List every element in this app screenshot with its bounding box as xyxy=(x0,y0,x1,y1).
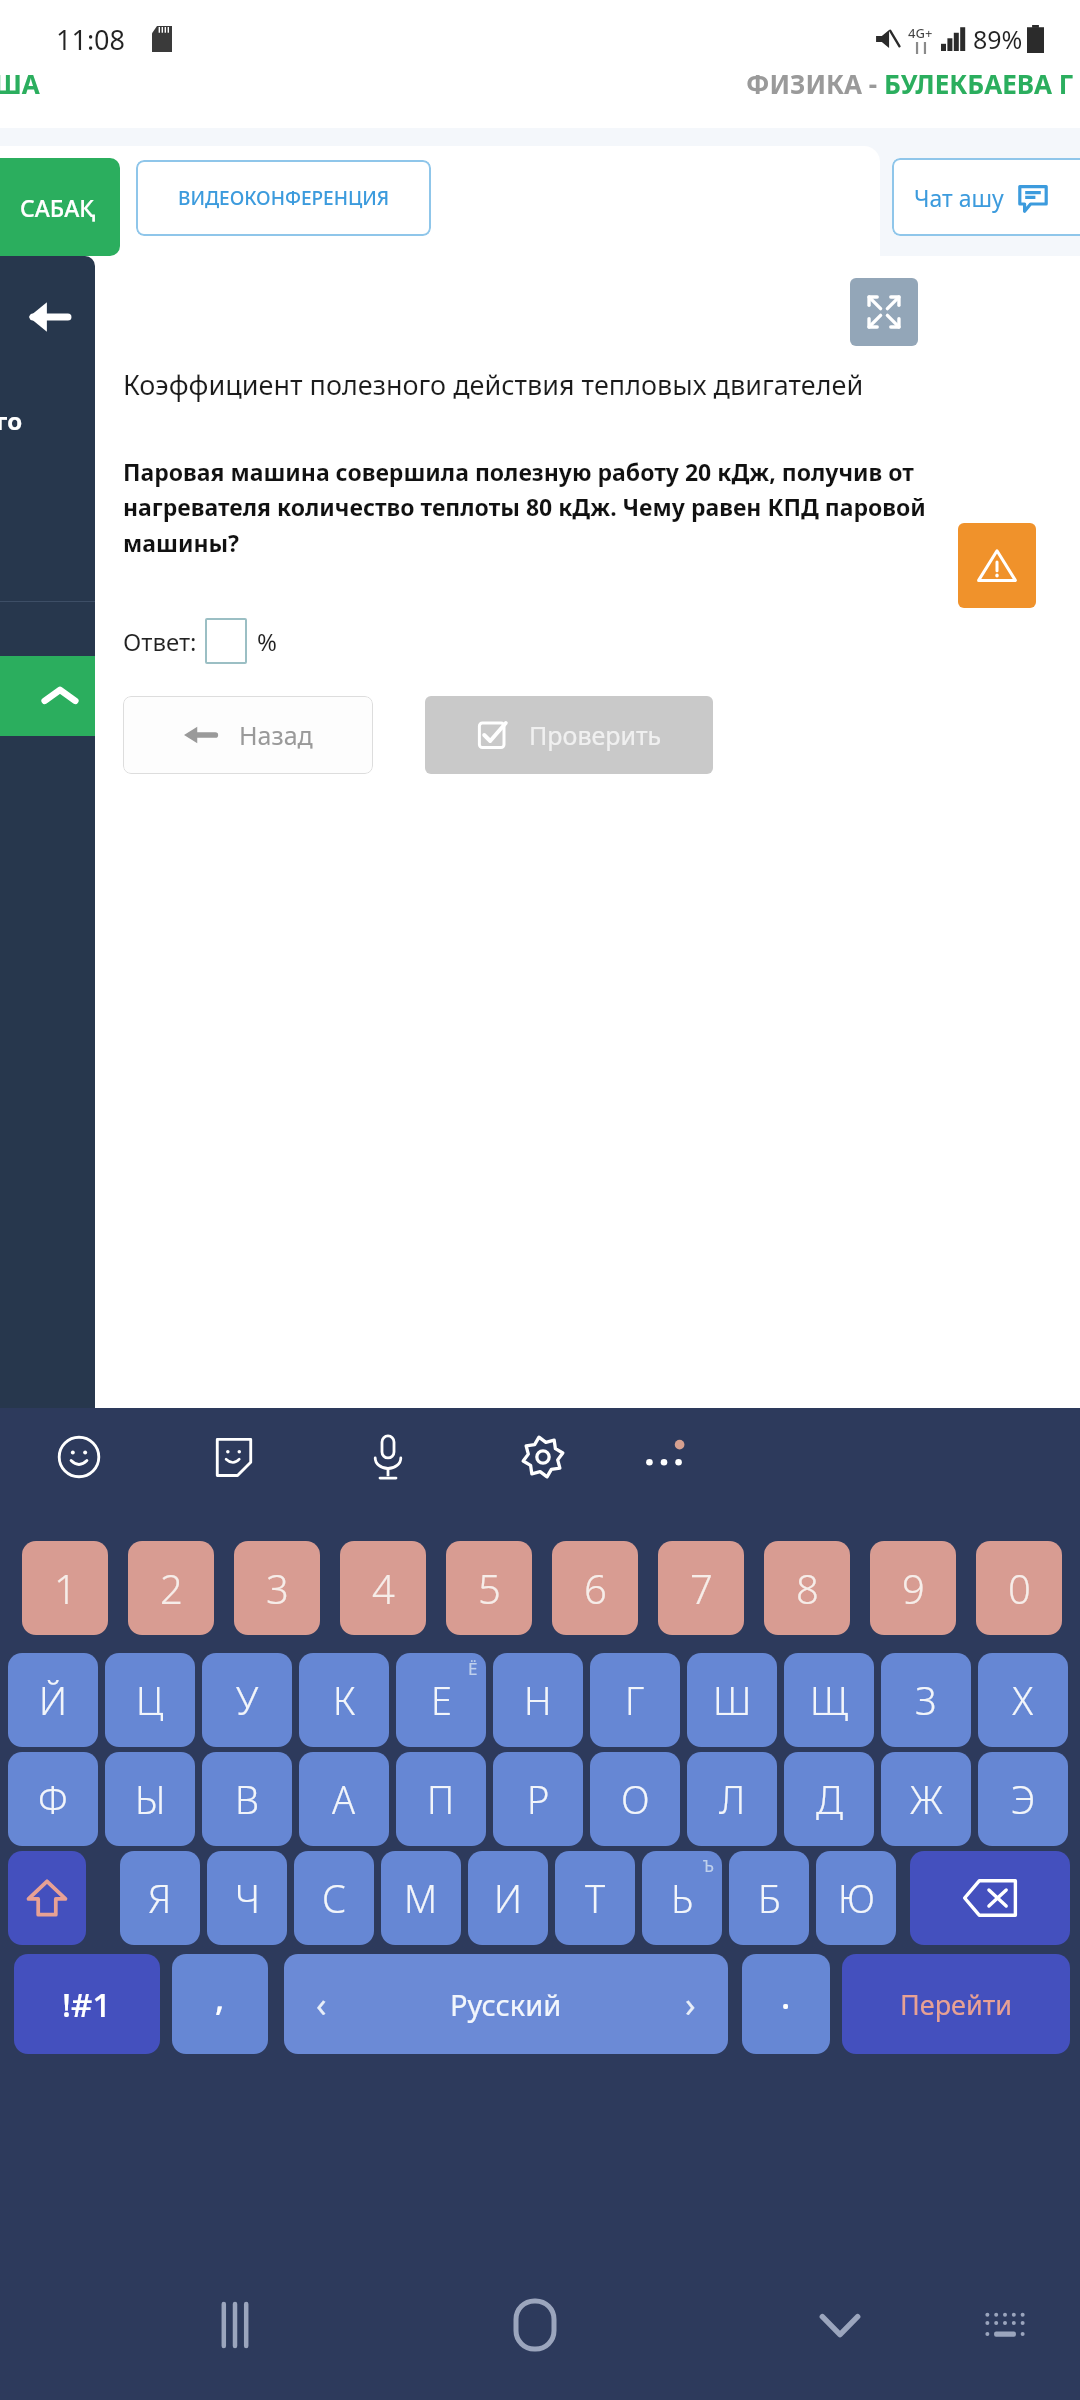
staticText: !#1 xyxy=(62,1982,112,2027)
button[interactable]: Ы xyxy=(105,1752,195,1846)
button[interactable]: В xyxy=(202,1752,292,1846)
staticText: Коэффициент полезного действия тепловых … xyxy=(123,366,1063,403)
button[interactable]: У xyxy=(202,1653,292,1747)
button[interactable]: Ю xyxy=(816,1851,896,1945)
button[interactable]: И xyxy=(468,1851,548,1945)
button[interactable]: 7 xyxy=(658,1541,744,1635)
staticText: И xyxy=(494,1872,522,1924)
staticText: , xyxy=(215,1975,225,2021)
button[interactable]: Д xyxy=(784,1752,874,1846)
staticText: Е xyxy=(431,1674,452,1726)
staticText: . xyxy=(781,1973,791,2019)
staticText: БУЛЕКБАЕВА Г xyxy=(884,66,1074,101)
button[interactable]: Hide keyboard xyxy=(780,2250,900,2400)
button[interactable]: 3 xyxy=(234,1541,320,1635)
button[interactable]: Shift xyxy=(8,1851,86,1945)
staticText: Назад xyxy=(239,718,313,752)
button[interactable]: О xyxy=(590,1752,680,1846)
staticText: Ответ: xyxy=(123,625,197,658)
button[interactable]: П xyxy=(396,1752,486,1846)
staticText: 4 xyxy=(372,1561,395,1615)
button[interactable]: Т xyxy=(555,1851,635,1945)
button[interactable]: К xyxy=(299,1653,389,1747)
button[interactable]: Ц xyxy=(105,1653,195,1747)
other: Voice input xyxy=(368,1433,408,1481)
staticText: Д xyxy=(816,1773,843,1825)
button[interactable]: Назад xyxy=(123,696,373,774)
button[interactable]: . xyxy=(0,656,95,736)
staticText: Й xyxy=(39,1674,67,1726)
button[interactable]: Ш xyxy=(687,1653,777,1747)
other: Emoji xyxy=(57,1435,101,1479)
button[interactable]: Й xyxy=(8,1653,98,1747)
button[interactable]: 4 xyxy=(340,1541,426,1635)
staticText: ША xyxy=(0,66,40,101)
button[interactable]: Ч xyxy=(207,1851,287,1945)
staticText: Б xyxy=(758,1872,781,1924)
button[interactable]: 8 xyxy=(764,1541,850,1635)
button[interactable]: САБАҚ xyxy=(0,158,120,256)
button[interactable]: Л xyxy=(687,1752,777,1846)
button[interactable]: Р xyxy=(493,1752,583,1846)
button[interactable]: Х xyxy=(978,1653,1068,1747)
staticText: Ю xyxy=(838,1872,875,1924)
button[interactable]: Щ xyxy=(784,1653,874,1747)
staticText: Ж xyxy=(910,1773,943,1825)
button[interactable]: Ь xyxy=(642,1851,722,1945)
button[interactable]: ВИДЕОКОНФЕРЕНЦИЯ xyxy=(136,160,431,236)
staticText: 3 xyxy=(266,1561,289,1615)
button[interactable]: Ф xyxy=(8,1752,98,1846)
button[interactable]: 1 xyxy=(22,1541,108,1635)
button[interactable]: Backspace xyxy=(910,1851,1070,1945)
button[interactable]: Е xyxy=(396,1653,486,1747)
button[interactable]: 6 xyxy=(552,1541,638,1635)
button[interactable]: Н xyxy=(493,1653,583,1747)
button[interactable]: Warning xyxy=(958,523,1036,608)
button[interactable]: ‹ xyxy=(284,1954,728,2054)
button[interactable]: 0 xyxy=(976,1541,1062,1635)
staticText: 7 xyxy=(690,1561,713,1615)
staticText: ВИДЕОКОНФЕРЕНЦИЯ xyxy=(178,185,390,211)
staticText: С xyxy=(322,1872,347,1924)
button[interactable]: Recents xyxy=(175,2250,295,2400)
staticText: Ъ xyxy=(703,1855,714,1877)
staticText: Ё xyxy=(468,1657,478,1680)
staticText: 2 xyxy=(160,1561,183,1615)
button[interactable]: Чат ашу xyxy=(892,158,1080,236)
button[interactable]: Б xyxy=(729,1851,809,1945)
button[interactable]: Home xyxy=(475,2250,595,2400)
button[interactable]: Перейти xyxy=(842,1954,1070,2054)
staticText: Ц xyxy=(136,1674,164,1726)
button[interactable]: Switch keyboard xyxy=(950,2250,1060,2400)
staticText: % xyxy=(257,625,277,658)
staticText: П xyxy=(427,1773,455,1825)
staticText: 6 xyxy=(584,1561,607,1615)
button[interactable]: 5 xyxy=(446,1541,532,1635)
button[interactable]: Fullscreen xyxy=(850,278,918,346)
button[interactable]: А xyxy=(299,1752,389,1846)
button[interactable]: 9 xyxy=(870,1541,956,1635)
staticText: З xyxy=(915,1674,937,1726)
button[interactable]: Ж xyxy=(881,1752,971,1846)
button[interactable]: Проверить xyxy=(425,696,713,774)
staticText: САБАҚ xyxy=(20,192,96,223)
staticText: Г xyxy=(625,1674,645,1726)
button[interactable]: М xyxy=(381,1851,461,1945)
button[interactable] xyxy=(205,618,247,664)
staticText: А xyxy=(332,1773,356,1825)
staticText: М xyxy=(404,1872,438,1924)
staticText: Щ xyxy=(810,1674,849,1726)
button[interactable]: Э xyxy=(978,1752,1068,1846)
other: More options xyxy=(638,1435,690,1479)
button[interactable]: . xyxy=(742,1954,830,2054)
button[interactable]: С xyxy=(294,1851,374,1945)
staticText: Ф xyxy=(38,1773,68,1825)
button[interactable]: Я xyxy=(120,1851,200,1945)
button[interactable]: !#1 xyxy=(14,1954,160,2054)
staticText: Ы xyxy=(135,1773,166,1825)
staticText: 5 xyxy=(478,1561,501,1615)
button[interactable]: , xyxy=(172,1954,268,2054)
button[interactable]: Г xyxy=(590,1653,680,1747)
button[interactable]: З xyxy=(881,1653,971,1747)
button[interactable]: 2 xyxy=(128,1541,214,1635)
